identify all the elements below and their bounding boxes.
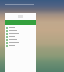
button[interactable] (5, 35, 36, 38)
button[interactable] (5, 32, 36, 35)
button[interactable] (5, 44, 36, 47)
button[interactable] (5, 26, 36, 29)
button[interactable] (5, 38, 36, 41)
button[interactable] (5, 29, 36, 32)
button[interactable] (5, 41, 36, 44)
